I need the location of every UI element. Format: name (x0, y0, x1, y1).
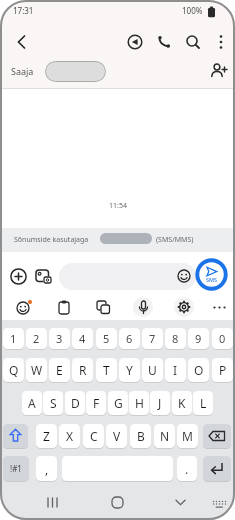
button[interactable] (166, 492, 194, 516)
staticText: X (66, 428, 74, 444)
button[interactable] (45, 61, 106, 82)
staticText: 1 (10, 331, 17, 346)
staticText: Saaja (11, 65, 34, 77)
button[interactable]: G (108, 391, 128, 415)
staticText: 2 (33, 331, 40, 346)
button[interactable]: U (142, 358, 163, 382)
button[interactable] (33, 265, 55, 287)
button[interactable] (59, 263, 196, 290)
button[interactable]: , (36, 456, 57, 481)
button[interactable]: V (106, 424, 127, 448)
button[interactable]: 0 (212, 328, 233, 349)
button[interactable] (132, 296, 154, 318)
staticText: J (158, 395, 162, 411)
button[interactable]: M (177, 424, 198, 448)
button[interactable]: 2 (26, 328, 47, 349)
staticText: 4 (79, 331, 86, 346)
button[interactable] (12, 296, 34, 318)
staticText: 100% (182, 5, 203, 16)
button[interactable] (53, 296, 75, 318)
button[interactable]: Q (3, 358, 24, 382)
staticText: H (135, 395, 144, 411)
button[interactable]: 3 (49, 328, 70, 349)
button[interactable]: L (193, 391, 213, 415)
button[interactable]: Y (119, 358, 140, 382)
staticText: R (79, 362, 87, 378)
staticText: N (160, 428, 170, 444)
button[interactable] (209, 296, 231, 318)
staticText: A (28, 395, 36, 411)
button[interactable]: I (165, 358, 186, 382)
button[interactable]: 1 (3, 328, 24, 349)
button[interactable] (8, 30, 34, 54)
button[interactable] (210, 495, 230, 513)
staticText: M (182, 428, 193, 444)
button[interactable] (205, 58, 231, 84)
staticText: 17:31 (13, 5, 34, 16)
button[interactable]: X (59, 424, 80, 448)
staticText: . (185, 461, 189, 477)
staticText: O (194, 362, 204, 378)
button[interactable] (152, 30, 176, 54)
button[interactable]: 4 (72, 328, 93, 349)
staticText: S (50, 395, 57, 411)
staticText: L (200, 395, 207, 411)
button[interactable]: Z (36, 424, 57, 448)
button[interactable] (211, 30, 231, 54)
button[interactable]: 6 (119, 328, 140, 349)
button[interactable]: F (86, 391, 106, 415)
button[interactable]: 9 (188, 328, 209, 349)
button[interactable]: H (129, 391, 149, 415)
staticText: 11:54 (109, 201, 127, 211)
staticText: SMS (206, 276, 218, 283)
button[interactable]: P (212, 358, 233, 382)
button[interactable] (7, 265, 29, 287)
button[interactable]: B (130, 424, 151, 448)
button[interactable]: . (177, 456, 197, 481)
staticText: 6 (126, 331, 133, 346)
staticText: I (173, 362, 178, 378)
button[interactable]: S (43, 391, 63, 415)
staticText: (SMS/MMS) (156, 235, 194, 245)
staticText: G (114, 395, 123, 411)
button[interactable]: O (188, 358, 209, 382)
button[interactable]: 7 (142, 328, 163, 349)
button[interactable]: J (150, 391, 170, 415)
button[interactable] (203, 424, 231, 448)
staticText: P (219, 362, 227, 378)
button[interactable] (103, 492, 131, 516)
staticText: D (71, 395, 80, 411)
button[interactable]: 8 (165, 328, 186, 349)
button[interactable] (123, 30, 147, 54)
button[interactable]: N (154, 424, 175, 448)
button[interactable] (38, 492, 66, 516)
staticText: E (56, 362, 63, 378)
button[interactable]: R (72, 358, 93, 382)
staticText: 3 (56, 331, 63, 346)
button[interactable]: D (65, 391, 85, 415)
staticText: 0 (219, 331, 226, 346)
button[interactable]: !#1 (3, 456, 29, 481)
staticText: U (148, 362, 157, 378)
button[interactable] (173, 296, 195, 318)
button[interactable]: K (172, 391, 192, 415)
button[interactable] (92, 296, 114, 318)
button[interactable]: 5 (96, 328, 117, 349)
staticText: Sõnumside kasutajaga (14, 235, 89, 245)
button[interactable] (3, 424, 28, 448)
staticText: 5 (103, 331, 110, 346)
staticText: Y (126, 362, 133, 378)
staticText: V (113, 428, 121, 444)
button[interactable]: E (49, 358, 70, 382)
staticText: , (45, 461, 49, 477)
button[interactable]: A (22, 391, 42, 415)
button[interactable]: SMS (195, 258, 228, 291)
staticText: K (178, 395, 186, 411)
button[interactable]: W (26, 358, 47, 382)
button[interactable] (203, 456, 231, 481)
button[interactable] (181, 30, 205, 54)
button[interactable]: T (96, 358, 117, 382)
button[interactable]: C (83, 424, 104, 448)
